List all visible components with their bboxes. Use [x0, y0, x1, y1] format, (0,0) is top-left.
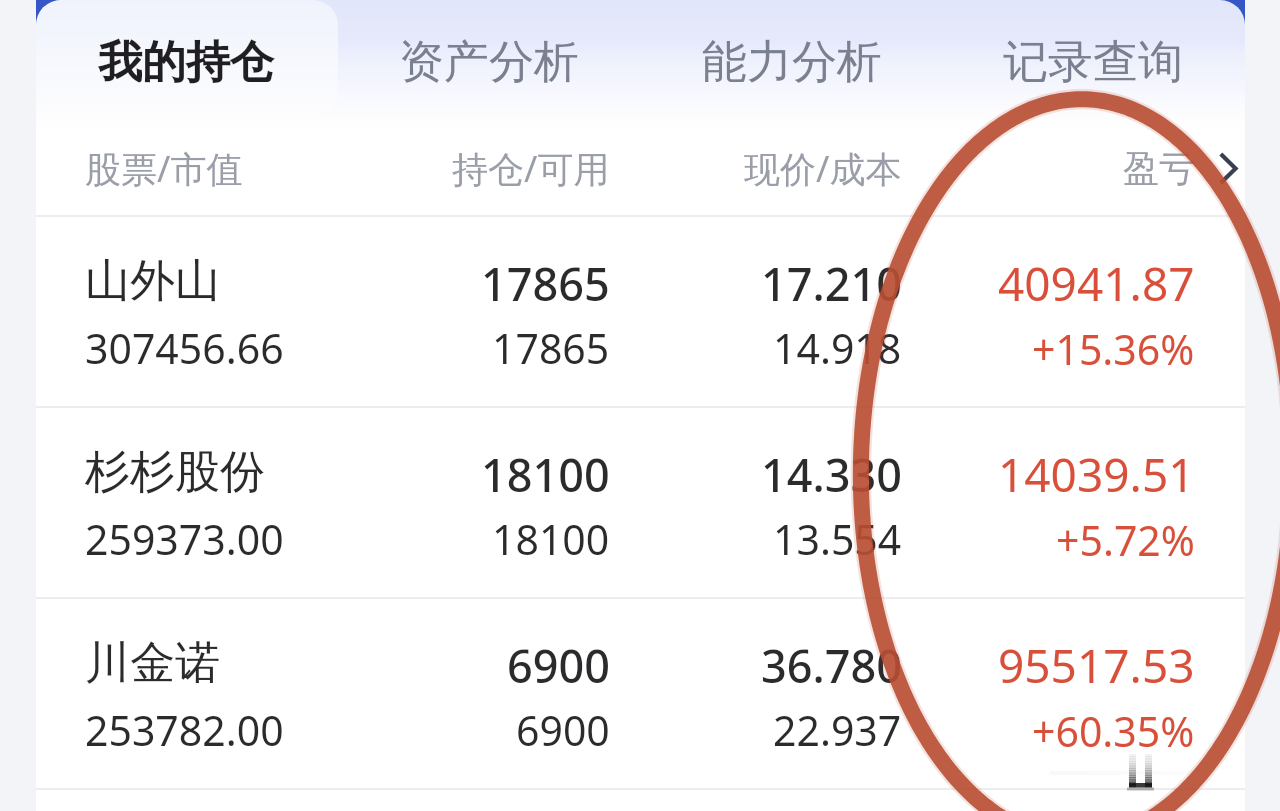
staticText: 能力分析: [702, 34, 882, 91]
button[interactable]: 资产分析: [336, 5, 642, 120]
button[interactable]: 川金诺: [36, 599, 1245, 790]
staticText: 14.918: [773, 320, 902, 376]
staticText: +5.72%: [1056, 512, 1195, 568]
staticText: 记录查询: [1003, 34, 1183, 91]
staticText: +60.35%: [1032, 703, 1195, 759]
other: More columns: [1219, 153, 1237, 184]
staticText: 40941.87: [998, 252, 1195, 315]
staticText: 17865: [481, 253, 610, 314]
staticText: 13.554: [773, 511, 902, 567]
staticText: 253782.00: [85, 702, 284, 758]
staticText: 现价/成本: [744, 144, 902, 193]
staticText: 18100: [492, 511, 610, 567]
staticText: 杉杉股份: [85, 444, 265, 501]
staticText: 22.937: [773, 702, 902, 758]
staticText: 36.780: [761, 635, 902, 696]
button[interactable]: 记录查询: [941, 5, 1245, 120]
staticText: 18100: [481, 444, 610, 505]
staticText: 14039.51: [998, 443, 1195, 506]
staticText: 盈亏: [1123, 146, 1195, 191]
button[interactable]: 能力分析: [642, 5, 941, 120]
staticText: +15.36%: [1032, 321, 1195, 377]
staticText: 6900: [507, 635, 610, 696]
staticText: 我的持仓: [98, 35, 274, 90]
staticText: 资产分析: [399, 34, 579, 91]
button[interactable]: 山外山: [36, 217, 1245, 408]
button[interactable]: 杉杉股份: [36, 408, 1245, 599]
staticText: 259373.00: [85, 511, 284, 567]
staticText: 6900: [516, 702, 610, 758]
staticText: 14.330: [761, 444, 902, 505]
staticText: 山外山: [85, 253, 220, 310]
staticText: 95517.53: [998, 634, 1195, 697]
button[interactable]: 我的持仓: [36, 5, 336, 120]
staticText: 17.210: [761, 253, 902, 314]
staticText: 17865: [492, 320, 610, 376]
staticText: 307456.66: [85, 320, 284, 376]
staticText: 持仓/可用: [452, 144, 610, 193]
staticText: 川金诺: [85, 635, 220, 692]
staticText: 股票/市值: [85, 144, 243, 193]
